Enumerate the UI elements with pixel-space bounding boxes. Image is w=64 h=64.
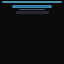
button[interactable]: Secondary card [16,11,49,14]
button[interactable]: Primary action [12,5,52,8]
button[interactable]: Title [2,1,62,3]
button[interactable]: Details [19,9,45,10]
